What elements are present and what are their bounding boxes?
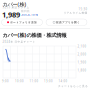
- staticText: 14:00: [58, 79, 67, 83]
- staticText: カバー(株)の株価・株式情報: [2, 31, 66, 39]
- staticText: 9:00: [2, 79, 9, 83]
- staticText: 1,800: [77, 69, 86, 72]
- staticText: 前日比: [21, 9, 30, 13]
- staticText: 10:00: [15, 79, 24, 83]
- staticText: -85(-4.10%): [21, 13, 38, 16]
- button[interactable]: 投資アプリを開く: [46, 19, 87, 25]
- staticText: 15:30: [78, 7, 87, 11]
- staticText: チャートをもっと見る: [58, 84, 88, 88]
- staticText: 2,000: [77, 53, 86, 56]
- staticText: リアルタイム株価: [63, 11, 87, 14]
- button[interactable]: チャートをもっと見る: [58, 84, 88, 88]
- staticText: 2024年 日中足チャート: [2, 40, 35, 43]
- staticText: 1,900: [77, 61, 86, 64]
- staticText: 13:00: [44, 79, 53, 83]
- button[interactable]: ポートフォリオ追加: [1, 19, 42, 25]
- staticText: ポートフォリオ追加: [10, 21, 37, 24]
- staticText: カバー(株): [2, 1, 26, 8]
- staticText: 1,989: [2, 9, 20, 20]
- staticText: 11:00: [29, 79, 38, 83]
- staticText: 投資アプリを開く: [56, 21, 80, 24]
- staticText: 2,100: [77, 45, 86, 48]
- staticText: 5253 東証プライム: [2, 5, 29, 9]
